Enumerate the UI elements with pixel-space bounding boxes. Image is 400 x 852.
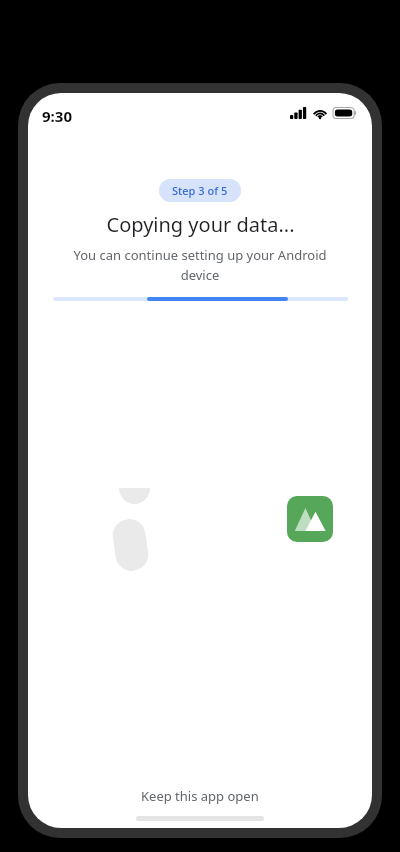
button[interactable]: Step 3 of 5	[159, 179, 241, 202]
other: Photo	[287, 496, 333, 542]
staticText: Keep this app open	[141, 787, 259, 805]
staticText: Step 3 of 5	[172, 183, 228, 198]
staticText: You can continue setting up your Android…	[60, 246, 340, 284]
staticText: Copying your data...	[106, 211, 295, 238]
staticText: 9:30	[42, 106, 72, 126]
